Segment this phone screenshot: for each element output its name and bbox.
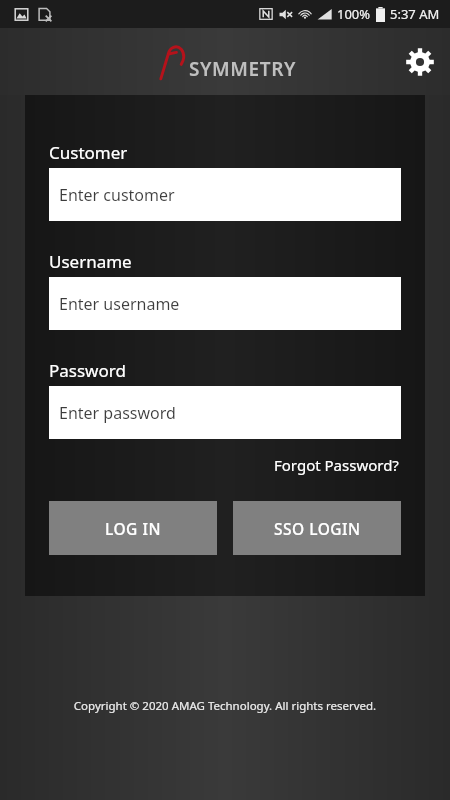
- button[interactable]: Enter username: [49, 277, 401, 330]
- staticText: 5:37 AM: [390, 5, 440, 23]
- staticText: Enter password: [59, 402, 176, 424]
- staticText: LOG IN: [105, 518, 161, 539]
- staticText: SSO LOGIN: [274, 518, 361, 539]
- staticText: Copyright © 2020 AMAG Technology. All ri…: [0, 698, 450, 714]
- button[interactable]: Settings: [398, 40, 442, 84]
- staticText: 100%: [337, 5, 371, 23]
- staticText: Password: [49, 359, 126, 382]
- button[interactable]: SSO LOGIN: [233, 501, 401, 555]
- button[interactable]: Enter password: [49, 386, 401, 439]
- staticText: Enter username: [59, 293, 180, 315]
- staticText: SYMMETRY: [189, 56, 297, 82]
- button[interactable]: Enter customer: [49, 168, 401, 221]
- button[interactable]: LOG IN: [49, 501, 217, 555]
- staticText: Enter customer: [59, 184, 175, 206]
- button[interactable]: Forgot Password?: [272, 451, 401, 479]
- staticText: Customer: [49, 141, 128, 164]
- staticText: Forgot Password?: [274, 455, 399, 475]
- staticText: Username: [49, 250, 132, 273]
